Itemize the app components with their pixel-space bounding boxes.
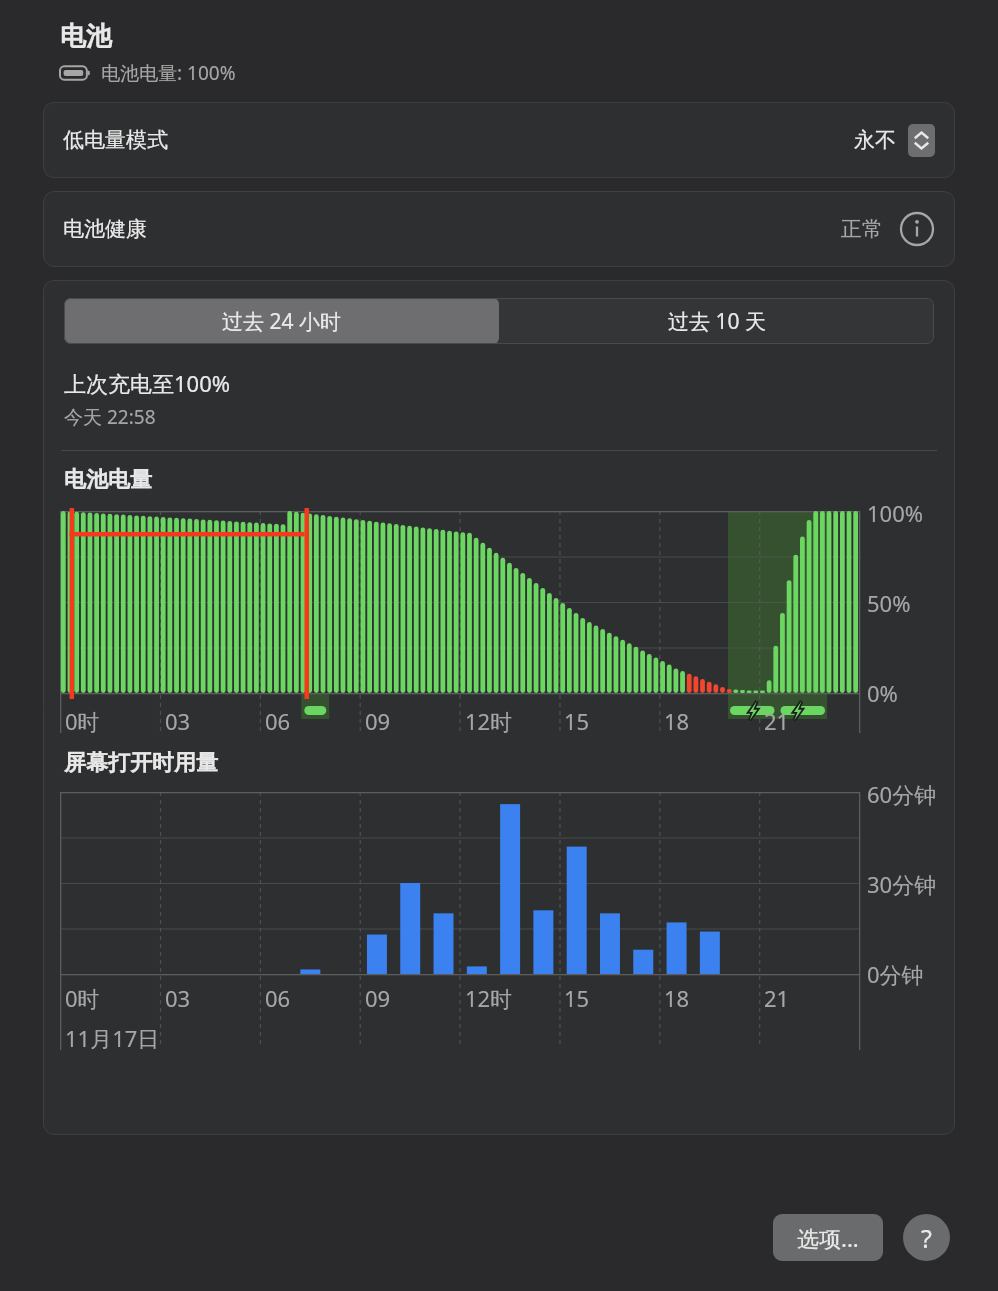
staticText: 0时 (65, 706, 100, 736)
button[interactable]: 过去 24 小时 (64, 298, 499, 344)
staticText: 11月17日 (65, 1023, 160, 1053)
staticText: 0% (867, 678, 898, 708)
staticText: 屏幕打开时用量 (64, 749, 218, 777)
staticText: 0时 (65, 983, 100, 1013)
staticText: 03 (165, 706, 191, 736)
staticText: 0分钟 (867, 959, 924, 989)
staticText: 21 (764, 706, 790, 736)
staticText: 100% (867, 498, 924, 528)
staticText: 电池健康 (63, 216, 147, 242)
button[interactable]: Change low power mode (908, 124, 935, 157)
button[interactable]: Help (903, 1214, 950, 1261)
staticText: 09 (365, 706, 391, 736)
staticText: 03 (165, 983, 191, 1013)
staticText: 过去 24 小时 (222, 307, 341, 336)
staticText: 永不 (854, 127, 896, 153)
staticText: 06 (265, 983, 291, 1013)
staticText: 06 (265, 706, 291, 736)
staticText: 选项... (797, 1223, 859, 1253)
staticText: 电池电量 (64, 466, 152, 494)
staticText: 18 (664, 983, 690, 1013)
button[interactable]: 电池健康 (43, 191, 955, 267)
staticText: 过去 10 天 (668, 307, 766, 336)
staticText: 15 (564, 706, 590, 736)
staticText: 12时 (465, 706, 513, 736)
staticText: 15 (564, 983, 590, 1013)
button[interactable]: 低电量模式 (43, 102, 955, 178)
staticText: 18 (664, 706, 690, 736)
staticText: 50% (867, 588, 911, 618)
staticText: 60分钟 (867, 779, 937, 809)
staticText: 电池电量: 100% (101, 60, 236, 86)
staticText: 30分钟 (867, 869, 937, 899)
staticText: 低电量模式 (63, 127, 168, 153)
staticText: 12时 (465, 983, 513, 1013)
button[interactable]: Battery health info (899, 211, 935, 247)
staticText: 正常 (841, 216, 883, 242)
staticText: 上次充电至100% (64, 368, 231, 398)
staticText: ? (921, 1221, 932, 1255)
staticText: 21 (764, 983, 790, 1013)
staticText: 电池 (60, 20, 112, 53)
staticText: 09 (365, 983, 391, 1013)
staticText: 今天 22:58 (64, 404, 156, 430)
button[interactable]: 过去 10 天 (499, 298, 934, 344)
button[interactable]: 选项... (773, 1214, 883, 1261)
